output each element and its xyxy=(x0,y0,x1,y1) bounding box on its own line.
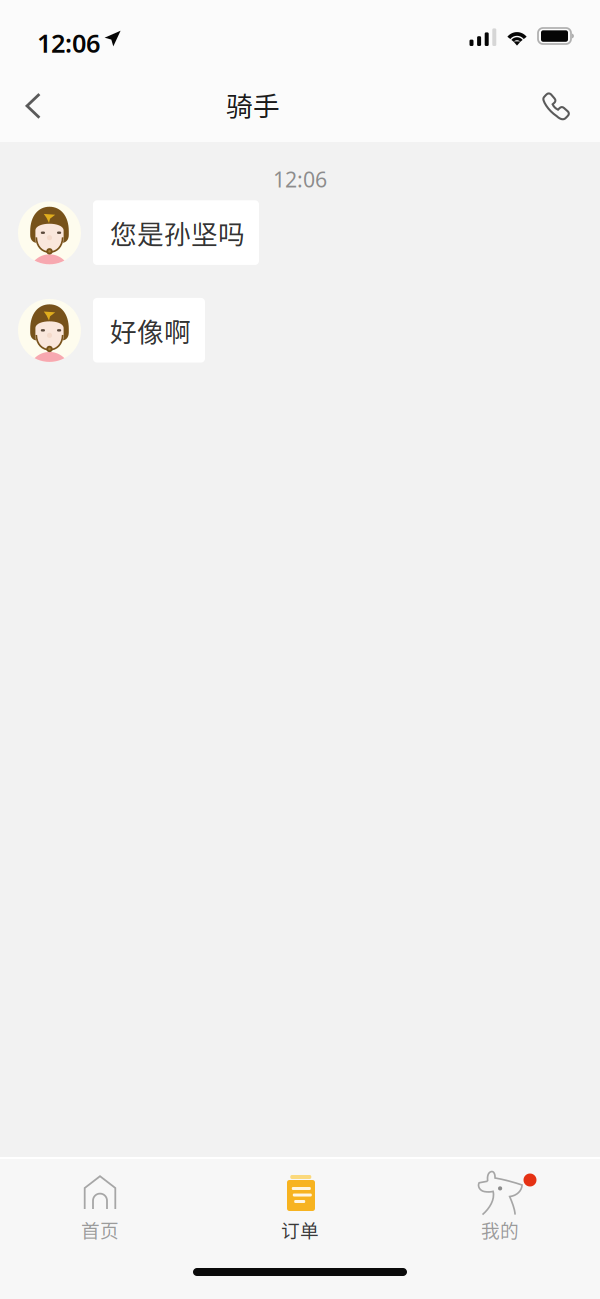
staticText: 12:06 xyxy=(273,165,327,193)
staticText: 您是孙坚吗 xyxy=(110,213,245,252)
staticText: 我的 xyxy=(481,1216,519,1243)
staticText: 首页 xyxy=(81,1216,119,1243)
staticText: 好像啊 xyxy=(110,311,191,349)
button[interactable]: 拨打电话 xyxy=(528,70,584,142)
button[interactable]: 我的 xyxy=(400,1159,600,1245)
staticText: 骑手 xyxy=(226,85,280,124)
staticText: 订单 xyxy=(281,1216,319,1243)
button[interactable]: 首页 xyxy=(0,1159,200,1245)
button[interactable]: 返回 xyxy=(5,70,61,142)
staticText: 12:06 xyxy=(37,26,100,60)
button[interactable]: 订单 xyxy=(200,1159,400,1245)
